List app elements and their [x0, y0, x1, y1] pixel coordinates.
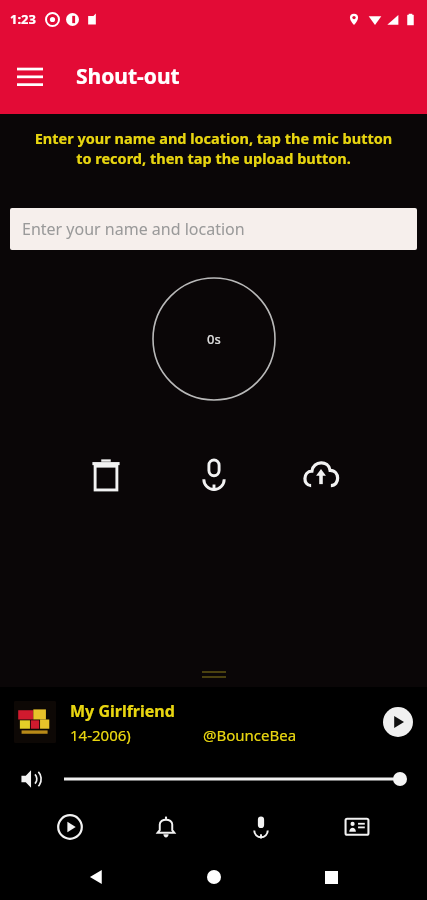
button[interactable]: Back — [74, 855, 118, 899]
button[interactable]: Volume — [16, 763, 48, 795]
button[interactable]: Play radio — [44, 801, 96, 853]
button[interactable]: Open navigation menu — [6, 52, 54, 100]
staticText: 0s — [207, 330, 221, 348]
button[interactable]: Home — [192, 855, 236, 899]
button[interactable]: Delete recording — [80, 449, 132, 501]
button[interactable]: Play — [383, 707, 413, 737]
staticText: 14-2006) — [70, 725, 131, 745]
staticText: Enter your name and location — [22, 218, 245, 240]
button[interactable]: Gallery — [331, 801, 383, 853]
staticText: 1:23 — [10, 10, 36, 28]
button[interactable]: Shout-out — [235, 801, 287, 853]
button[interactable]: Notifications — [140, 801, 192, 853]
staticText: Shout-out — [76, 62, 180, 91]
button[interactable]: Recording timer — [152, 277, 276, 401]
button[interactable]: Volume slider — [64, 763, 407, 795]
staticText: @BounceBea — [203, 725, 297, 745]
staticText: My Girlfriend — [70, 700, 175, 722]
button[interactable]: Expand player — [0, 661, 427, 687]
staticText: Enter your name and location, tap the mi… — [26, 128, 401, 168]
button[interactable]: Record with microphone — [188, 449, 240, 501]
button[interactable]: Recent apps — [309, 855, 353, 899]
button[interactable]: My Girlfriend — [0, 687, 427, 757]
button[interactable]: Upload recording — [295, 449, 347, 501]
button[interactable]: Enter your name and location — [10, 208, 417, 250]
